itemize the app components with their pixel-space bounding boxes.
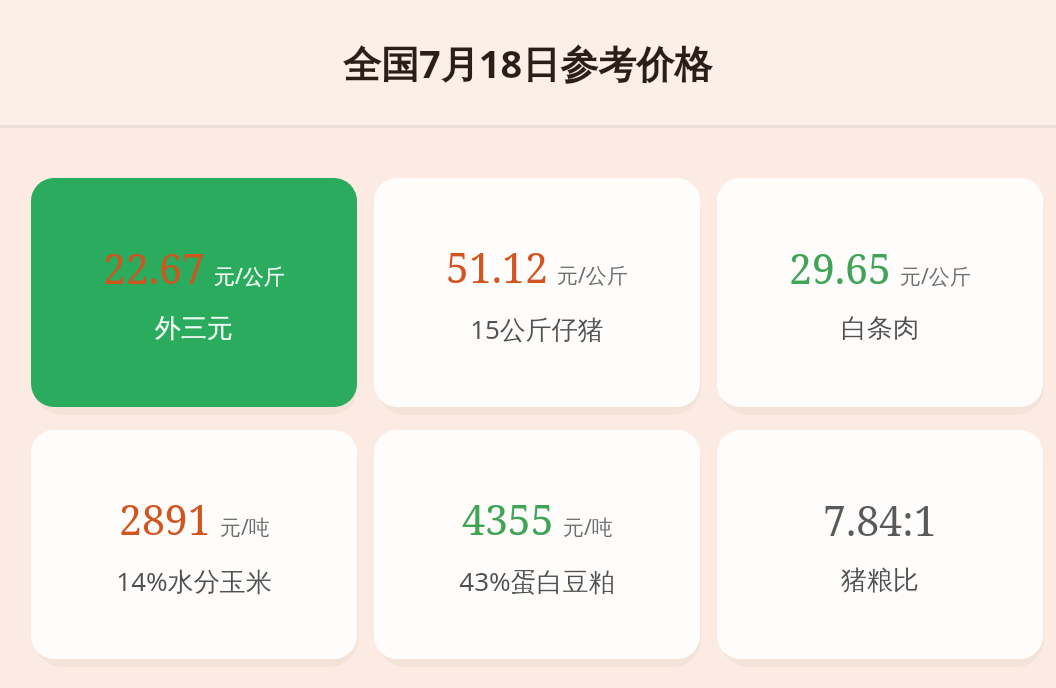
staticText: 元/公斤 [900,262,971,291]
staticText: 元/公斤 [214,262,285,291]
staticText: 元/吨 [563,513,613,542]
staticText: 元/公斤 [557,261,628,290]
staticText: 29.65 [789,240,891,296]
staticText: 4355 [462,491,554,547]
staticText: 15公斤仔猪 [470,311,604,347]
button[interactable]: 51.12 [374,178,700,407]
staticText: 2891 [119,491,211,547]
staticText: 全国7月18日参考价格 [343,37,713,89]
staticText: 22.67 [103,240,205,296]
staticText: 元/吨 [220,513,270,542]
staticText: 51.12 [446,239,548,295]
button[interactable]: 7.84:1 [717,430,1043,659]
button[interactable]: 29.65 [717,178,1043,407]
staticText: 外三元 [155,312,233,345]
staticText: 白条肉 [841,312,919,345]
staticText: 猪粮比 [841,564,919,597]
staticText: 43%蛋白豆粕 [459,563,615,599]
button[interactable]: 4355 [374,430,700,659]
staticText: 7.84:1 [823,492,937,548]
staticText: 14%水分玉米 [116,563,272,599]
button[interactable]: 22.67 [31,178,357,407]
button[interactable]: 2891 [31,430,357,659]
